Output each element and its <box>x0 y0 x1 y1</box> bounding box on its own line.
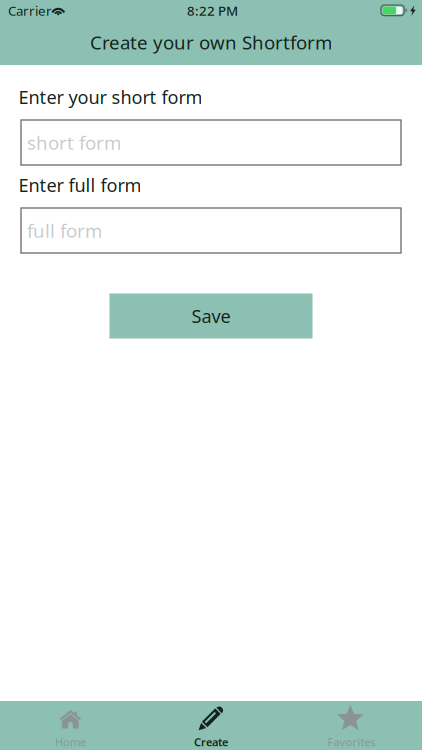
button[interactable]: short form <box>21 120 401 165</box>
staticText: Create <box>194 734 228 750</box>
staticText: Enter full form <box>18 172 141 197</box>
button[interactable]: full form <box>21 208 401 253</box>
button[interactable]: Create <box>141 701 281 750</box>
button[interactable]: Favorites <box>281 701 422 750</box>
staticText: Home <box>55 734 86 750</box>
staticText: Create your own Shortform <box>90 29 332 55</box>
staticText: 8:22 PM <box>187 1 238 20</box>
staticText: Enter your short form <box>18 84 202 109</box>
staticText: Favorites <box>328 734 376 750</box>
staticText: full form <box>27 218 102 243</box>
staticText: Save <box>191 304 230 328</box>
button[interactable]: Save <box>109 293 312 338</box>
button[interactable]: Home <box>0 701 141 750</box>
staticText: Carrier <box>8 1 52 20</box>
staticText: short form <box>27 130 121 155</box>
